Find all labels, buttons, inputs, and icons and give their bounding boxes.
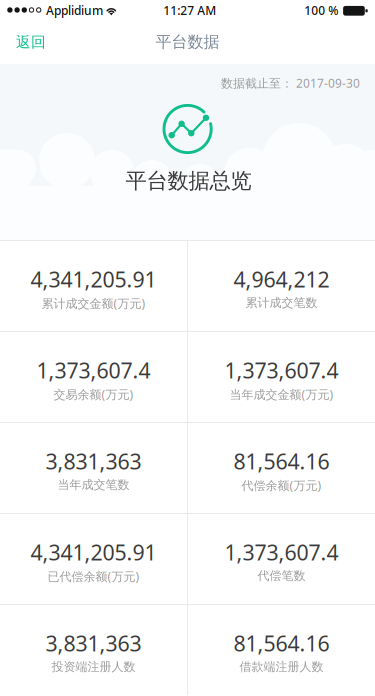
staticText: 4,341,205.91 bbox=[30, 538, 156, 566]
staticText: Applidium bbox=[46, 2, 103, 18]
staticText: 数据截止至： 2017-09-30 bbox=[221, 75, 360, 91]
staticText: 投资端注册人数 bbox=[51, 659, 135, 674]
staticText: 11:27 AM bbox=[163, 2, 216, 18]
staticText: 已代偿余额(万元) bbox=[47, 568, 139, 584]
staticText: 平台数据 bbox=[155, 32, 219, 52]
staticText: 81,564.16 bbox=[233, 629, 329, 657]
staticText: 1,373,607.4 bbox=[224, 538, 338, 566]
staticText: 当年成交金额(万元) bbox=[229, 386, 333, 402]
staticText: 81,564.16 bbox=[233, 447, 329, 475]
staticText: 4,341,205.91 bbox=[30, 265, 156, 293]
staticText: 100 % bbox=[304, 2, 338, 18]
staticText: 代偿余额(万元) bbox=[241, 477, 321, 493]
staticText: 3,831,363 bbox=[45, 629, 141, 657]
staticText: 交易余额(万元) bbox=[53, 386, 133, 402]
staticText: 1,373,607.4 bbox=[224, 356, 338, 384]
staticText: 4,964,212 bbox=[233, 265, 329, 293]
staticText: 返回 bbox=[16, 33, 46, 51]
staticText: 累计成交金额(万元) bbox=[41, 295, 145, 311]
staticText: 借款端注册人数 bbox=[239, 659, 323, 674]
staticText: 平台数据总览 bbox=[126, 168, 252, 194]
staticText: 3,831,363 bbox=[45, 447, 141, 475]
staticText: 累计成交笔数 bbox=[245, 295, 317, 310]
button[interactable]: 返回 bbox=[0, 20, 62, 64]
staticText: 代偿笔数 bbox=[257, 568, 305, 583]
staticText: 1,373,607.4 bbox=[36, 356, 150, 384]
staticText: 当年成交笔数 bbox=[57, 477, 129, 492]
